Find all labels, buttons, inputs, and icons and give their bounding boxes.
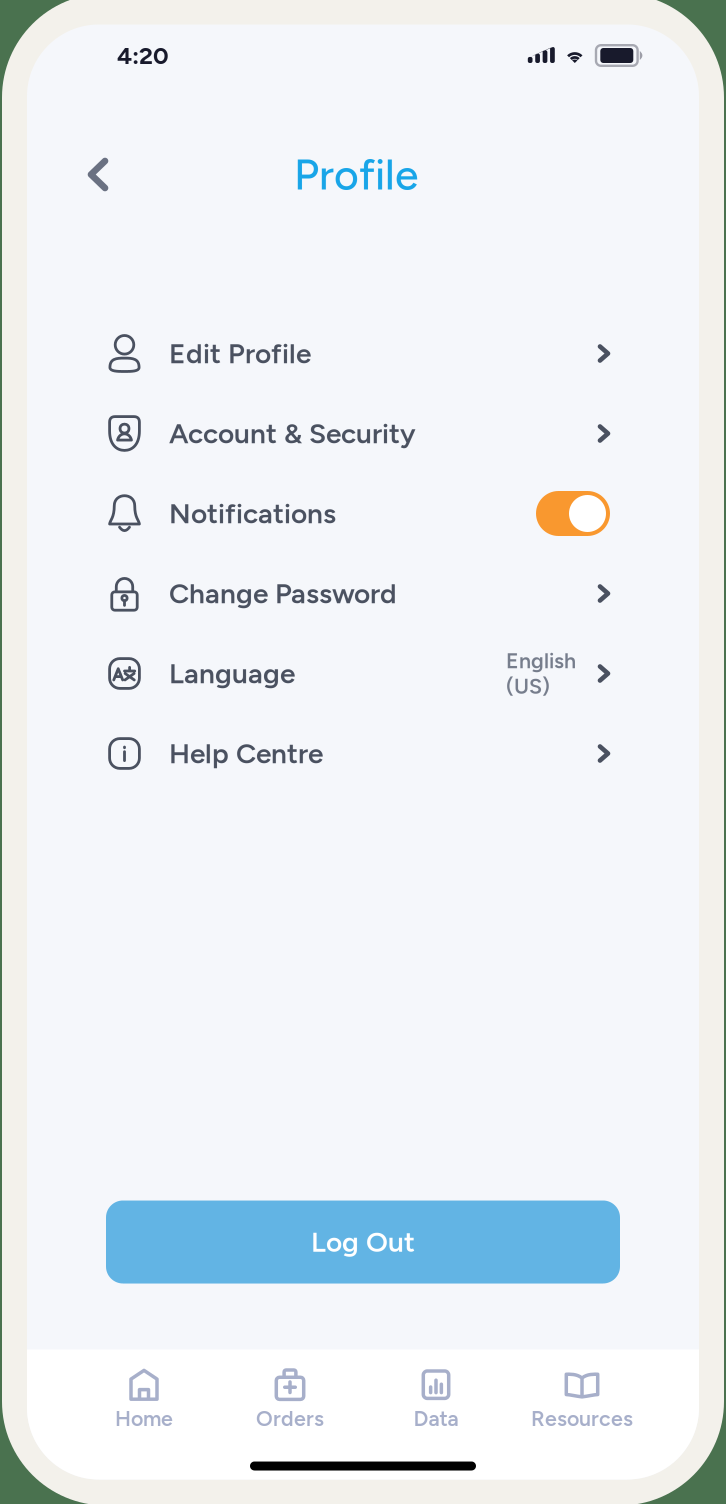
button[interactable]: Language	[27, 633, 699, 713]
staticText: Account & Security	[169, 417, 416, 450]
staticText: Data	[413, 1406, 458, 1431]
staticText: Home	[115, 1406, 173, 1431]
staticText: Edit Profile	[169, 337, 311, 370]
staticText: Resources	[531, 1406, 633, 1431]
staticText: Change Password	[169, 577, 397, 610]
button[interactable]: Log Out	[106, 1200, 620, 1283]
staticText: 4:20	[117, 41, 169, 70]
staticText: Language	[169, 657, 295, 690]
staticText: Profile	[294, 149, 418, 200]
button[interactable]: Change Password	[27, 553, 699, 633]
button[interactable]: Data	[363, 1370, 509, 1428]
staticText: Orders	[256, 1406, 324, 1431]
staticText: Help Centre	[169, 737, 323, 770]
button[interactable]: Orders	[217, 1370, 363, 1428]
button[interactable]: Help Centre	[27, 713, 699, 793]
button[interactable]: Resources	[509, 1370, 655, 1428]
staticText: Log Out	[311, 1225, 415, 1259]
button[interactable]: Notifications	[27, 473, 699, 553]
button[interactable]: Back	[70, 146, 126, 202]
staticText: Notifications	[169, 497, 336, 530]
button[interactable]: Account & Security	[27, 393, 699, 473]
button[interactable]: Edit Profile	[27, 313, 699, 393]
staticText: English (US)	[506, 648, 576, 699]
button[interactable]: Home	[71, 1370, 217, 1428]
